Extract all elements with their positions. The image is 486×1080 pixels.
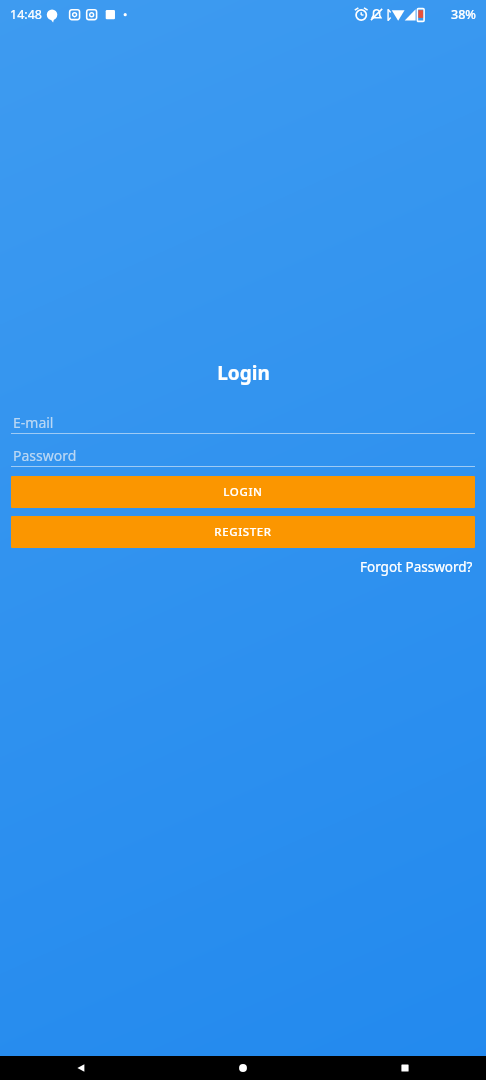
- button[interactable]: Back: [0, 1056, 162, 1080]
- button[interactable]: Recent apps: [324, 1056, 486, 1080]
- staticText: 14:48: [10, 6, 42, 23]
- button[interactable]: Forgot Password?: [358, 554, 475, 580]
- button[interactable]: REGISTER: [11, 516, 475, 548]
- button[interactable]: E-mail: [11, 411, 475, 434]
- staticText: Password: [13, 446, 77, 465]
- staticText: Login: [217, 360, 270, 386]
- staticText: E-mail: [13, 413, 54, 432]
- staticText: REGISTER: [214, 524, 272, 540]
- button[interactable]: LOGIN: [11, 476, 475, 508]
- button[interactable]: Home: [162, 1056, 324, 1080]
- button[interactable]: Password: [11, 444, 475, 467]
- staticText: Forgot Password?: [360, 558, 473, 576]
- staticText: LOGIN: [223, 484, 263, 500]
- staticText: 38%: [451, 6, 476, 23]
